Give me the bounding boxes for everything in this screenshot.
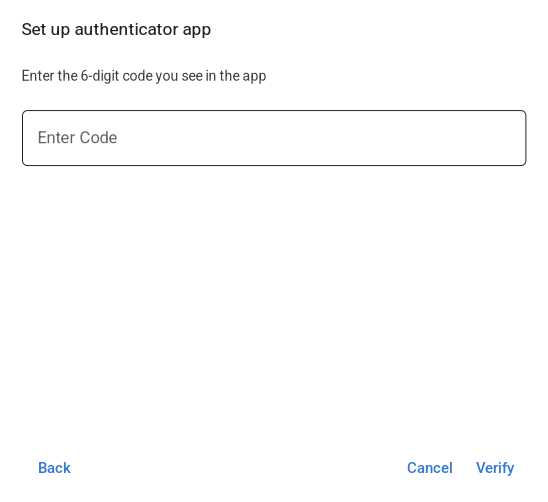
button[interactable]: Enter Code (22, 110, 525, 165)
staticText: Back (38, 459, 71, 476)
staticText: Set up authenticator app (22, 19, 212, 39)
button[interactable]: Verify (476, 459, 514, 476)
staticText: Verify (476, 459, 514, 476)
staticText: Cancel (407, 459, 453, 476)
button[interactable]: Back (38, 459, 71, 476)
button[interactable]: Cancel (407, 459, 453, 476)
staticText: Enter Code (38, 128, 118, 147)
staticText: Enter the 6-digit code you see in the ap… (22, 68, 267, 84)
